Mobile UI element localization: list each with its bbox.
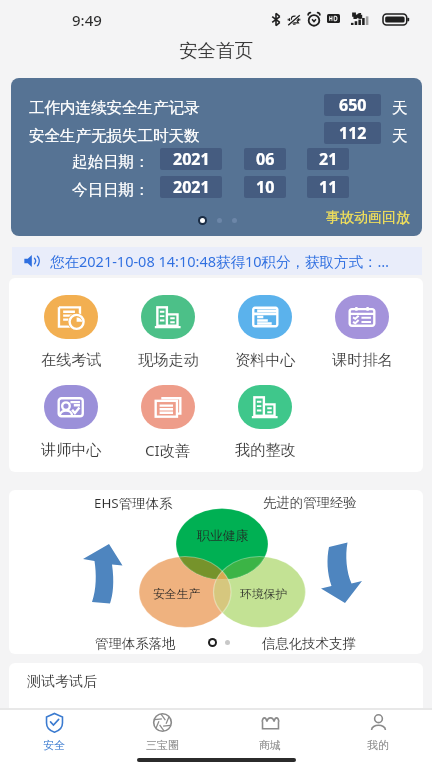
staticText: 112 <box>339 122 367 144</box>
button[interactable]: 安全 <box>0 711 108 752</box>
staticText: 安全首页 <box>179 39 253 62</box>
button[interactable]: 测试考试后 <box>9 663 423 709</box>
staticText: 环境保护 <box>240 587 288 602</box>
staticText: 天 <box>392 98 408 118</box>
staticText: 安全 <box>43 738 65 752</box>
staticText: 安全生产 <box>153 587 201 602</box>
staticText: 我的整改 <box>235 440 296 459</box>
button[interactable]: 商城 <box>216 711 324 752</box>
button[interactable]: 您在2021-10-08 14:10:48获得10积分，获取方式：… <box>12 247 422 275</box>
button[interactable]: 课时排名 <box>324 295 400 369</box>
staticText: 我的 <box>367 738 389 752</box>
staticText: EHS管理体系 <box>94 494 173 512</box>
staticText: 650 <box>339 94 367 116</box>
staticText: 安全生产无损失工时天数 <box>29 126 200 146</box>
staticText: 06 <box>256 148 275 170</box>
staticText: 商城 <box>259 738 281 752</box>
button[interactable]: 三宝圈 <box>108 711 216 752</box>
staticText: 10 <box>256 176 275 198</box>
staticText: 现场走动 <box>138 350 199 369</box>
staticText: 您在2021-10-08 14:10:48获得10积分，获取方式：… <box>50 251 390 271</box>
button[interactable]: CI改善 <box>130 385 206 461</box>
staticText: 职业健康 <box>197 528 249 544</box>
button[interactable]: 我的 <box>324 711 432 752</box>
staticText: 11 <box>319 176 338 198</box>
button[interactable]: 工作内连续安全生产记录 <box>11 78 422 236</box>
staticText: 测试考试后 <box>27 673 97 691</box>
staticText: 起始日期： <box>72 152 150 172</box>
staticText: 信息化技术支撑 <box>262 635 356 652</box>
staticText: 在线考试 <box>41 350 102 369</box>
button[interactable]: 资料中心 <box>227 295 303 369</box>
staticText: 课时排名 <box>332 350 393 369</box>
button[interactable]: 事故动画回放 <box>326 209 410 227</box>
staticText: 今日日期： <box>72 180 150 200</box>
staticText: 21 <box>319 148 338 170</box>
staticText: 2021 <box>173 148 210 170</box>
button[interactable]: 在线考试 <box>33 295 109 369</box>
staticText: 先进的管理经验 <box>263 494 357 511</box>
staticText: CI改善 <box>145 440 191 461</box>
staticText: 9:49 <box>72 10 102 30</box>
staticText: 资料中心 <box>235 350 296 369</box>
button[interactable]: EHS管理体系 <box>9 490 423 654</box>
staticText: 讲师中心 <box>41 440 102 459</box>
staticText: 2021 <box>173 176 210 198</box>
staticText: 三宝圈 <box>146 738 179 752</box>
staticText: 工作内连续安全生产记录 <box>29 98 200 118</box>
button[interactable]: 我的整改 <box>227 385 303 459</box>
staticText: 管理体系落地 <box>95 635 176 652</box>
staticText: 天 <box>392 126 408 146</box>
button[interactable]: 现场走动 <box>130 295 206 369</box>
button[interactable]: 讲师中心 <box>33 385 109 459</box>
